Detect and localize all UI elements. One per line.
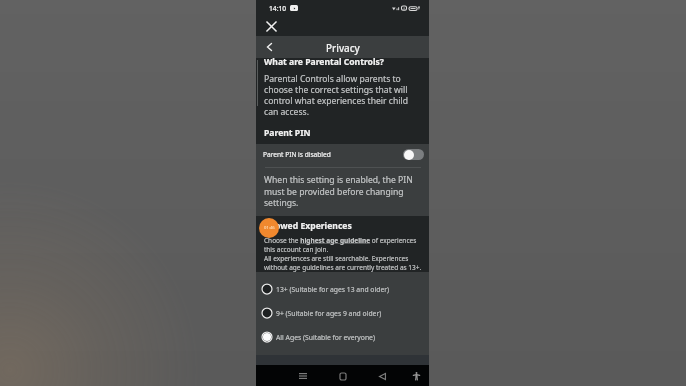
staticText: 01:46 xyxy=(264,225,275,231)
button[interactable]: Back xyxy=(262,40,276,54)
button[interactable]: 9+ (Suitable for ages 9 and older) xyxy=(256,301,429,325)
staticText: Parent PIN xyxy=(264,127,311,139)
staticText: What are Parental Controls? xyxy=(264,56,384,68)
staticText: When this setting is enabled, the PIN mu… xyxy=(264,174,413,208)
button[interactable]: Recent apps xyxy=(294,367,312,385)
staticText: Parent PIN is disabled xyxy=(263,150,331,159)
staticText: Parental Controls allow parents to choos… xyxy=(264,73,409,118)
button[interactable]: Parent PIN is disabled xyxy=(256,144,429,165)
staticText: Allowed Experiences xyxy=(264,220,352,232)
staticText: 9+ (Suitable for ages 9 and older) xyxy=(276,309,382,318)
staticText: All Ages (Suitable for everyone) xyxy=(276,333,375,342)
button[interactable]: 13+ (Suitable for ages 13 and older) xyxy=(256,277,429,301)
button[interactable]: Accessibility xyxy=(407,367,425,385)
staticText: 13+ (Suitable for ages 13 and older) xyxy=(276,285,390,294)
staticText: Privacy xyxy=(326,41,360,54)
button[interactable]: Home xyxy=(334,367,352,385)
button[interactable]: All Ages (Suitable for everyone) xyxy=(256,325,429,349)
button[interactable]: Back xyxy=(373,367,391,385)
staticText: 14:10 xyxy=(269,4,287,13)
button[interactable]: Close xyxy=(263,18,279,34)
staticText: Choose the highest age guideline of expe… xyxy=(264,236,417,254)
staticText: All experiences are still searchable. Ex… xyxy=(264,254,422,272)
